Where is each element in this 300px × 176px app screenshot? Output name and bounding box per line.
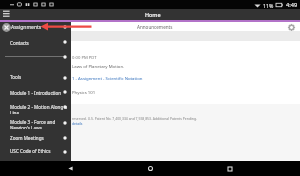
staticText: Module 2 - Motion Along a Line bbox=[10, 104, 68, 114]
button[interactable]: Settings bbox=[287, 23, 296, 32]
staticText: Module 1 - Introduction bbox=[10, 90, 62, 96]
button[interactable]: Module 3 - Force and Newton's Laws bbox=[0, 118, 71, 128]
staticText: 0:00 PM PDT bbox=[72, 55, 97, 61]
button[interactable]: Contacts bbox=[0, 39, 71, 49]
staticText: reserved. U.S. Patent No. 7,400,334 and … bbox=[72, 116, 197, 121]
staticText: Laws of Planetary Motion. bbox=[72, 63, 125, 69]
staticText: Zoom Meetings bbox=[10, 135, 44, 141]
staticText: 4:49 bbox=[286, 1, 298, 9]
button[interactable]: Open navigation drawer bbox=[0, 9, 13, 22]
staticText: 11% bbox=[263, 2, 274, 9]
button[interactable]: Recent apps bbox=[220, 161, 240, 176]
button[interactable]: Assignments bbox=[0, 22, 71, 33]
button[interactable]: Module 2 - Motion Along a Line bbox=[0, 103, 71, 113]
staticText: Contacts bbox=[10, 40, 29, 46]
button[interactable]: USC Code of Ethics bbox=[0, 147, 71, 157]
staticText: Physics 101 bbox=[72, 89, 96, 95]
button[interactable]: Zoom Meetings bbox=[0, 134, 71, 144]
staticText: Module 3 - Force and Newton's Laws bbox=[10, 119, 56, 129]
button[interactable]: Home bbox=[140, 161, 160, 176]
staticText: details bbox=[72, 121, 83, 126]
staticText: Assignments bbox=[11, 24, 42, 31]
staticText: Announcements bbox=[137, 24, 173, 30]
button[interactable]: Back bbox=[60, 161, 80, 176]
staticText: 1 - Assignment - Scientific Notation bbox=[72, 75, 143, 81]
button[interactable]: Module 1 - Introduction bbox=[0, 89, 71, 99]
staticText: Home bbox=[145, 11, 161, 18]
staticText: USC Code of Ethics bbox=[10, 148, 51, 154]
button[interactable]: Tools bbox=[0, 73, 71, 83]
staticText: Tools bbox=[10, 74, 22, 80]
